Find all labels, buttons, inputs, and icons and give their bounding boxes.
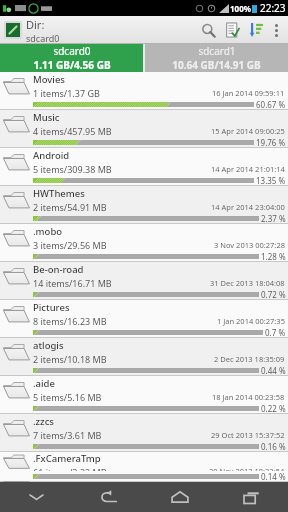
button[interactable]: Back	[72, 482, 144, 512]
staticText: 60.67 %	[256, 99, 286, 109]
staticText: .FxCameraTmp	[33, 452, 101, 465]
staticText: 3 items/29.56 MB	[33, 239, 107, 251]
staticText: 3 Nov 2013 00:27:28	[214, 240, 285, 250]
staticText: 14 items/16.71 MB	[33, 277, 112, 289]
button[interactable]: .zzcs	[0, 414, 288, 452]
staticText: Music	[33, 111, 60, 124]
staticText: 18 Jan 2014 00:23:58	[212, 392, 285, 402]
button[interactable]: .mobo	[0, 224, 288, 262]
staticText: .mobo	[33, 225, 63, 238]
button[interactable]: Android	[0, 148, 288, 186]
staticText: 10.64 GB/14.91 GB	[172, 58, 261, 72]
button[interactable]: atlogis	[0, 338, 288, 376]
staticText: 2 items/10.18 MB	[33, 353, 107, 365]
button[interactable]: Sort	[244, 18, 268, 42]
staticText: 29 Oct 2013 15:37:52	[211, 430, 285, 440]
staticText: 4 items/457.95 MB	[33, 125, 112, 137]
staticText: 0.16 %	[261, 441, 286, 451]
staticText: Movies	[33, 73, 65, 86]
staticText: 19.76 %	[256, 137, 286, 147]
button[interactable]: Recent apps	[216, 482, 288, 512]
staticText: .aide	[33, 377, 55, 390]
button[interactable]: .FxCameraTmp	[0, 452, 288, 482]
staticText: Android	[33, 149, 70, 162]
staticText: 1 items/1.37 GB	[33, 87, 100, 99]
staticText: 2 items/54.91 MB	[33, 201, 107, 213]
staticText: 0.44 %	[261, 365, 286, 375]
staticText: 0.72 %	[261, 289, 286, 299]
button[interactable]: HWThemes	[0, 186, 288, 224]
staticText: Pictures	[33, 301, 70, 314]
staticText: 1 Jan 2014 00:27:35	[217, 316, 285, 326]
button[interactable]: .aide	[0, 376, 288, 414]
button[interactable]: Hide keyboard	[0, 482, 72, 512]
button[interactable]: App icon	[4, 21, 22, 39]
staticText: 31 Dec 2013 18:04:08	[210, 278, 285, 288]
button[interactable]: sdcard1	[145, 44, 288, 72]
staticText: 5 items/309.38 MB	[33, 163, 112, 175]
staticText: sdcard0	[53, 44, 91, 58]
button[interactable]: Select items	[220, 18, 244, 42]
staticText: Be-on-road	[33, 263, 84, 276]
staticText: 14 Apr 2014 23:04:00	[211, 202, 285, 212]
button[interactable]: Be-on-road	[0, 262, 288, 300]
staticText: sdcard0	[26, 32, 60, 44]
button[interactable]: sdcard0	[0, 44, 143, 72]
staticText: 1.11 GB/4.56 GB	[33, 58, 111, 72]
button[interactable]: Music	[0, 110, 288, 148]
staticText: 1.28 %	[261, 251, 286, 261]
staticText: 5 items/5.16 MB	[33, 391, 102, 403]
button[interactable]: Pictures	[0, 300, 288, 338]
staticText: 7 items/3.61 MB	[33, 429, 102, 441]
button[interactable]: More options	[268, 18, 284, 42]
staticText: 22:23	[260, 1, 286, 15]
staticText: 61 items/3.22 MB	[33, 466, 107, 471]
staticText: 0.7 %	[265, 327, 286, 337]
staticText: 2 Dec 2013 18:35:09	[214, 354, 285, 364]
button[interactable]: Search	[196, 18, 220, 42]
staticText: 8 items/16.23 MB	[33, 315, 107, 327]
button[interactable]: Home	[144, 482, 216, 512]
staticText: 0.14 %	[261, 471, 286, 481]
staticText: 14 Apr 2014 21:01:14	[211, 164, 285, 174]
staticText: 13.35 %	[256, 175, 286, 185]
staticText: 20 Nov 2013 18:32:54	[209, 466, 285, 471]
staticText: 15 Apr 2014 09:00:25	[211, 126, 285, 136]
staticText: atlogis	[33, 339, 64, 352]
staticText: Dir:	[26, 17, 45, 32]
staticText: 0.22 %	[261, 403, 286, 413]
staticText: HWThemes	[33, 187, 85, 200]
staticText: 2.37 %	[261, 213, 286, 223]
staticText: 16 Jan 2014 09:59:11	[212, 88, 285, 98]
button[interactable]: Movies	[0, 72, 288, 110]
staticText: .zzcs	[33, 415, 54, 428]
staticText: sdcard1	[198, 44, 236, 58]
staticText: 100%	[230, 3, 251, 14]
